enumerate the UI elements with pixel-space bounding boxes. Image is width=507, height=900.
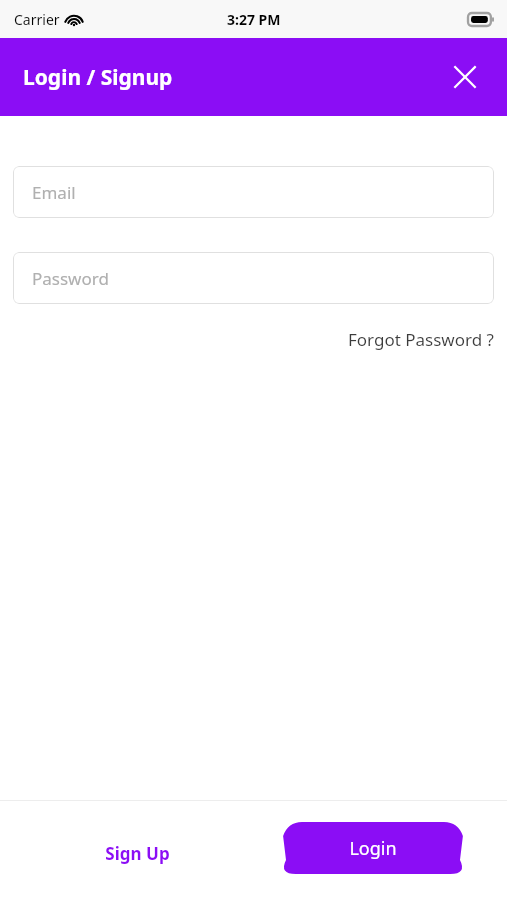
button[interactable]: Sign Up bbox=[84, 833, 190, 873]
button[interactable]: Close bbox=[443, 55, 487, 99]
staticText: 3:27 PM bbox=[227, 10, 281, 29]
staticText: Password bbox=[32, 267, 109, 290]
staticText: Forgot Password ? bbox=[348, 328, 494, 351]
staticText: Login / Signup bbox=[23, 63, 173, 92]
button[interactable]: Login bbox=[279, 822, 467, 874]
staticText: Carrier bbox=[14, 10, 60, 29]
staticText: Login bbox=[349, 836, 397, 861]
button[interactable]: Forgot Password ? bbox=[335, 324, 507, 355]
staticText: Email bbox=[32, 181, 76, 204]
button[interactable]: Email bbox=[13, 166, 494, 218]
staticText: Sign Up bbox=[105, 842, 170, 865]
button[interactable]: Password bbox=[13, 252, 494, 304]
